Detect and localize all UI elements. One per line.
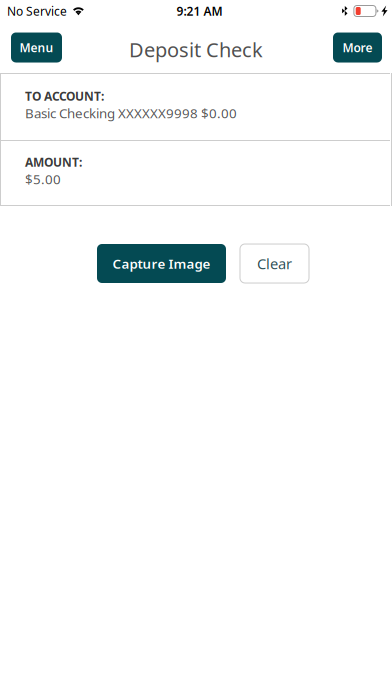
button[interactable]: Menu (11, 32, 62, 62)
staticText: TO ACCOUNT: (25, 88, 104, 104)
staticText: Basic Checking XXXXXX9998 $0.00 (25, 104, 237, 122)
staticText: Deposit Check (129, 36, 263, 63)
staticText: Capture Image (112, 255, 210, 272)
staticText: AMOUNT: (25, 154, 82, 170)
button[interactable]: Clear (240, 244, 309, 283)
staticText: Clear (257, 254, 292, 273)
staticText: No Service (7, 3, 67, 19)
staticText: 9:21 AM (176, 3, 222, 19)
staticText: $5.00 (25, 170, 61, 188)
staticText: Menu (19, 39, 53, 55)
button[interactable]: More (333, 32, 382, 62)
button[interactable]: Capture Image (97, 244, 226, 283)
staticText: More (342, 39, 372, 55)
